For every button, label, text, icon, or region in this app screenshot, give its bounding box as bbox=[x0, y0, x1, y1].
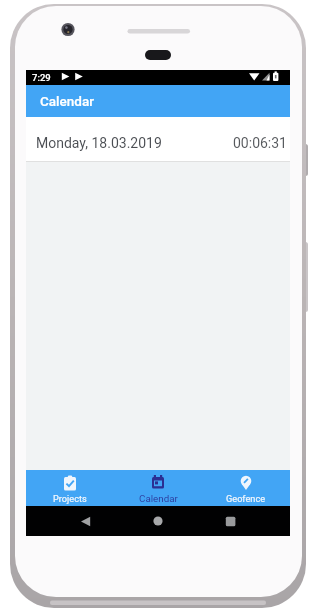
staticText: Projects bbox=[53, 493, 87, 504]
staticText: Calendar bbox=[139, 493, 178, 504]
button[interactable] bbox=[26, 506, 114, 536]
button[interactable]: Geofence bbox=[202, 470, 290, 506]
staticText: 00:06:31 bbox=[233, 135, 287, 151]
staticText: Monday, 18.03.2019 bbox=[36, 135, 162, 151]
button[interactable]: Projects bbox=[26, 470, 114, 506]
button[interactable] bbox=[114, 506, 202, 536]
staticText: Calendar bbox=[40, 93, 95, 109]
staticText: 7:29 bbox=[32, 72, 51, 83]
button[interactable]: Monday, 18.03.2019 bbox=[26, 117, 290, 161]
staticText: Geofence bbox=[226, 493, 266, 504]
button[interactable]: Calendar bbox=[114, 470, 202, 506]
button[interactable] bbox=[202, 506, 290, 536]
